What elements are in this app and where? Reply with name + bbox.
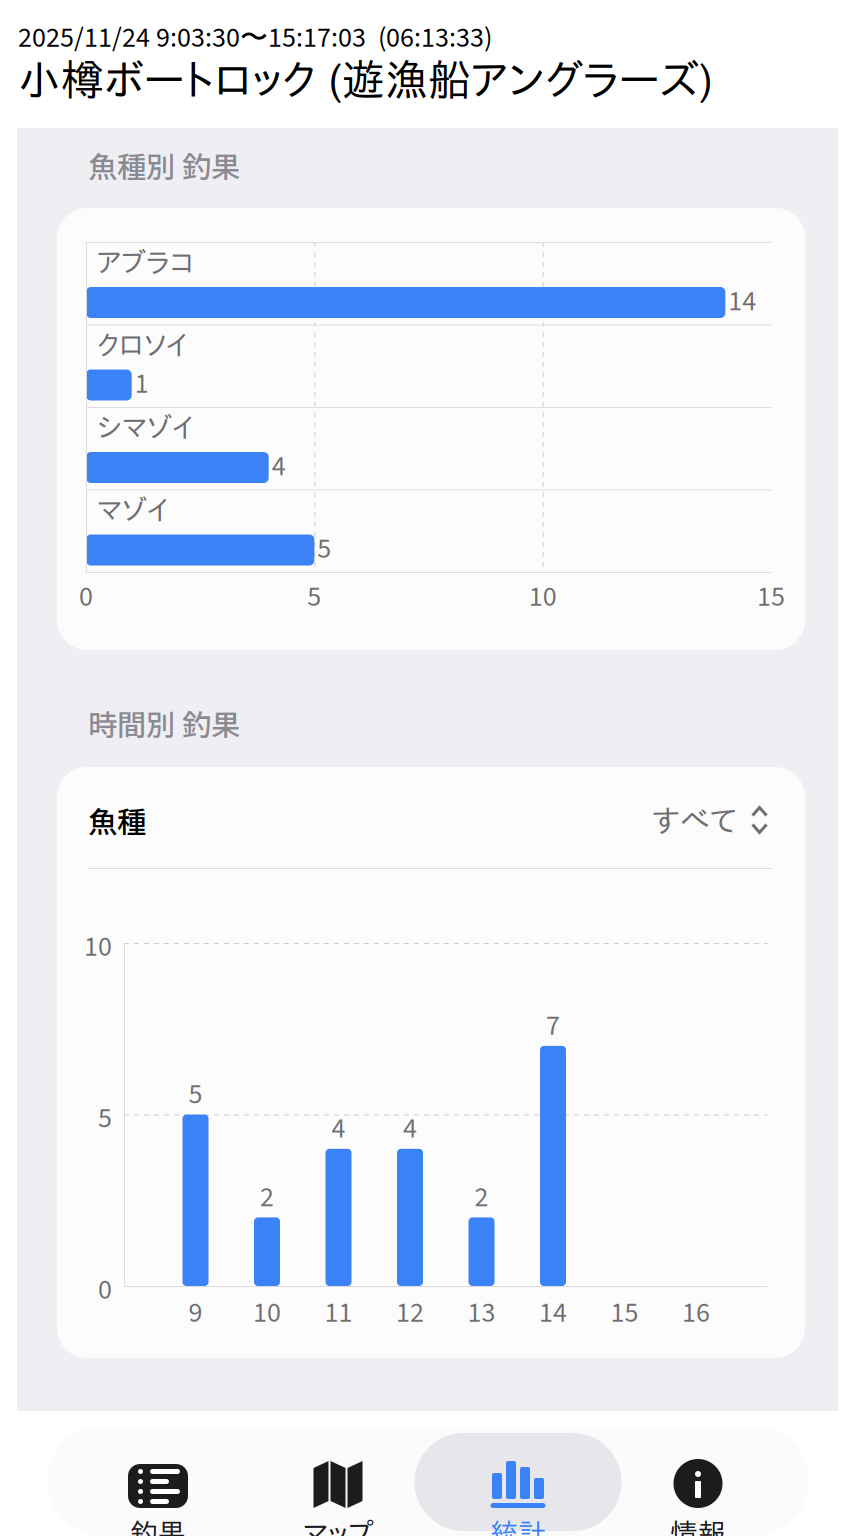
staticText: 0 [98,1270,112,1310]
staticText: 10 [84,927,112,967]
staticText: 15 [610,1293,638,1333]
staticText: 5 [98,1098,112,1138]
staticText: 12 [396,1293,424,1333]
staticText: 15 [757,577,785,617]
staticText: 情報 [670,1519,726,1536]
staticText: 5 [188,1075,202,1114]
staticText: 2 [260,1177,274,1217]
staticText: 釣果 [130,1519,186,1536]
staticText: 2025/11/24 9:03:30〜15:17:03 (06:13:33) [18,18,492,58]
button[interactable]: 釣果 [54,1433,261,1536]
staticText: 16 [682,1293,710,1333]
button[interactable]: 情報 [594,1433,801,1536]
staticText: 時間別 釣果 [88,702,240,744]
staticText: アブラコ [97,248,194,276]
button[interactable]: 統計 [414,1433,621,1536]
staticText: 13 [467,1293,495,1333]
staticText: 10 [253,1293,281,1333]
staticText: すべて [652,805,737,835]
staticText: 統計 [490,1519,546,1536]
staticText: 9 [188,1293,202,1333]
staticText: マップ [303,1519,373,1536]
staticText: シマゾイ [97,413,193,441]
staticText: クロソイ [97,330,187,358]
staticText: 魚種別 釣果 [88,144,240,186]
staticText: 4 [403,1109,417,1149]
button[interactable]: マップ [234,1433,441,1536]
staticText: 4 [331,1109,345,1149]
staticText: 7 [546,1006,560,1046]
staticText: 14 [539,1293,567,1333]
staticText: 5 [317,529,331,569]
button[interactable]: すべて [652,803,768,837]
staticText: 小樽ボートロック (遊漁船アングラーズ) [18,58,713,101]
staticText: 11 [324,1293,352,1333]
staticText: 2 [474,1177,488,1217]
staticText: 魚種 [88,799,146,841]
staticText: 1 [135,364,149,404]
staticText: 14 [728,282,756,321]
staticText: マゾイ [97,495,168,523]
staticText: 5 [307,577,321,617]
staticText: 10 [529,577,557,617]
staticText: 4 [272,447,286,486]
staticText: 0 [79,577,93,617]
